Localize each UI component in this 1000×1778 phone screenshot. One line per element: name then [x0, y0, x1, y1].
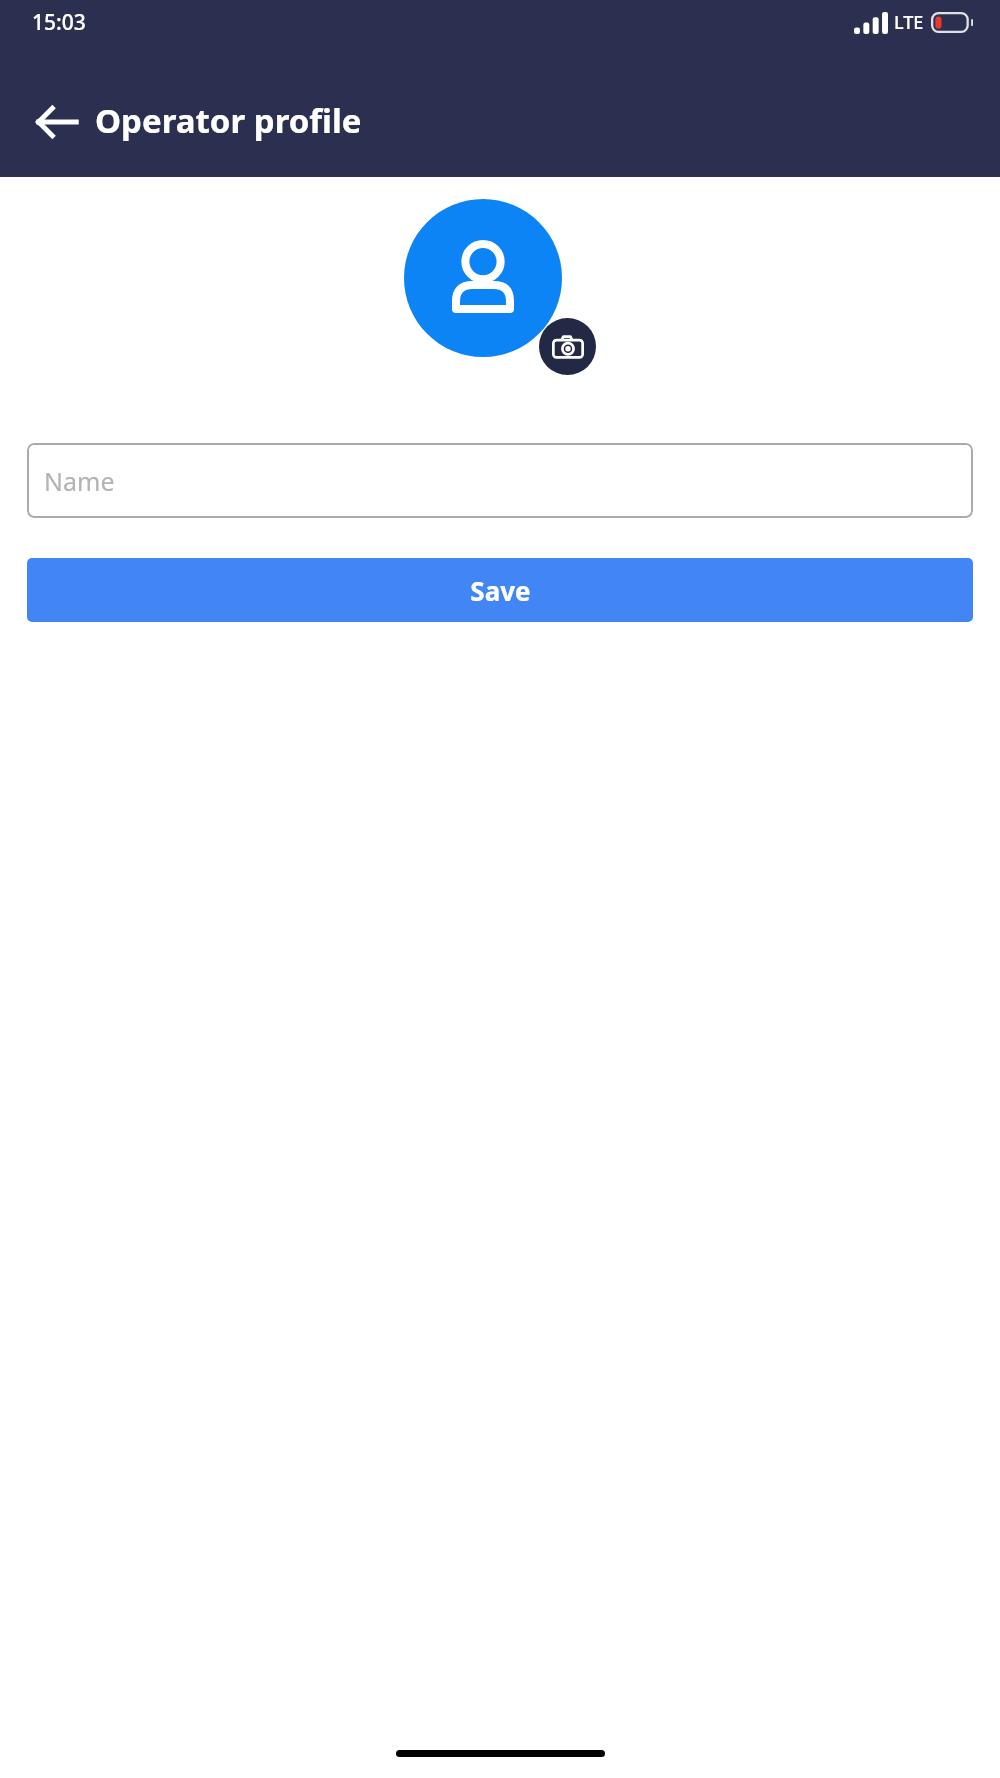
button[interactable]: Save: [27, 558, 973, 622]
staticText: Name: [44, 464, 115, 498]
button[interactable]: Name: [27, 443, 973, 518]
staticText: LTE: [894, 10, 924, 35]
button[interactable]: Change photo: [539, 318, 596, 375]
staticText: 15:03: [32, 8, 86, 37]
button[interactable]: Back: [21, 86, 93, 158]
staticText: Save: [470, 573, 531, 608]
staticText: Operator profile: [95, 98, 362, 143]
button[interactable]: Profile photo: [404, 199, 562, 357]
